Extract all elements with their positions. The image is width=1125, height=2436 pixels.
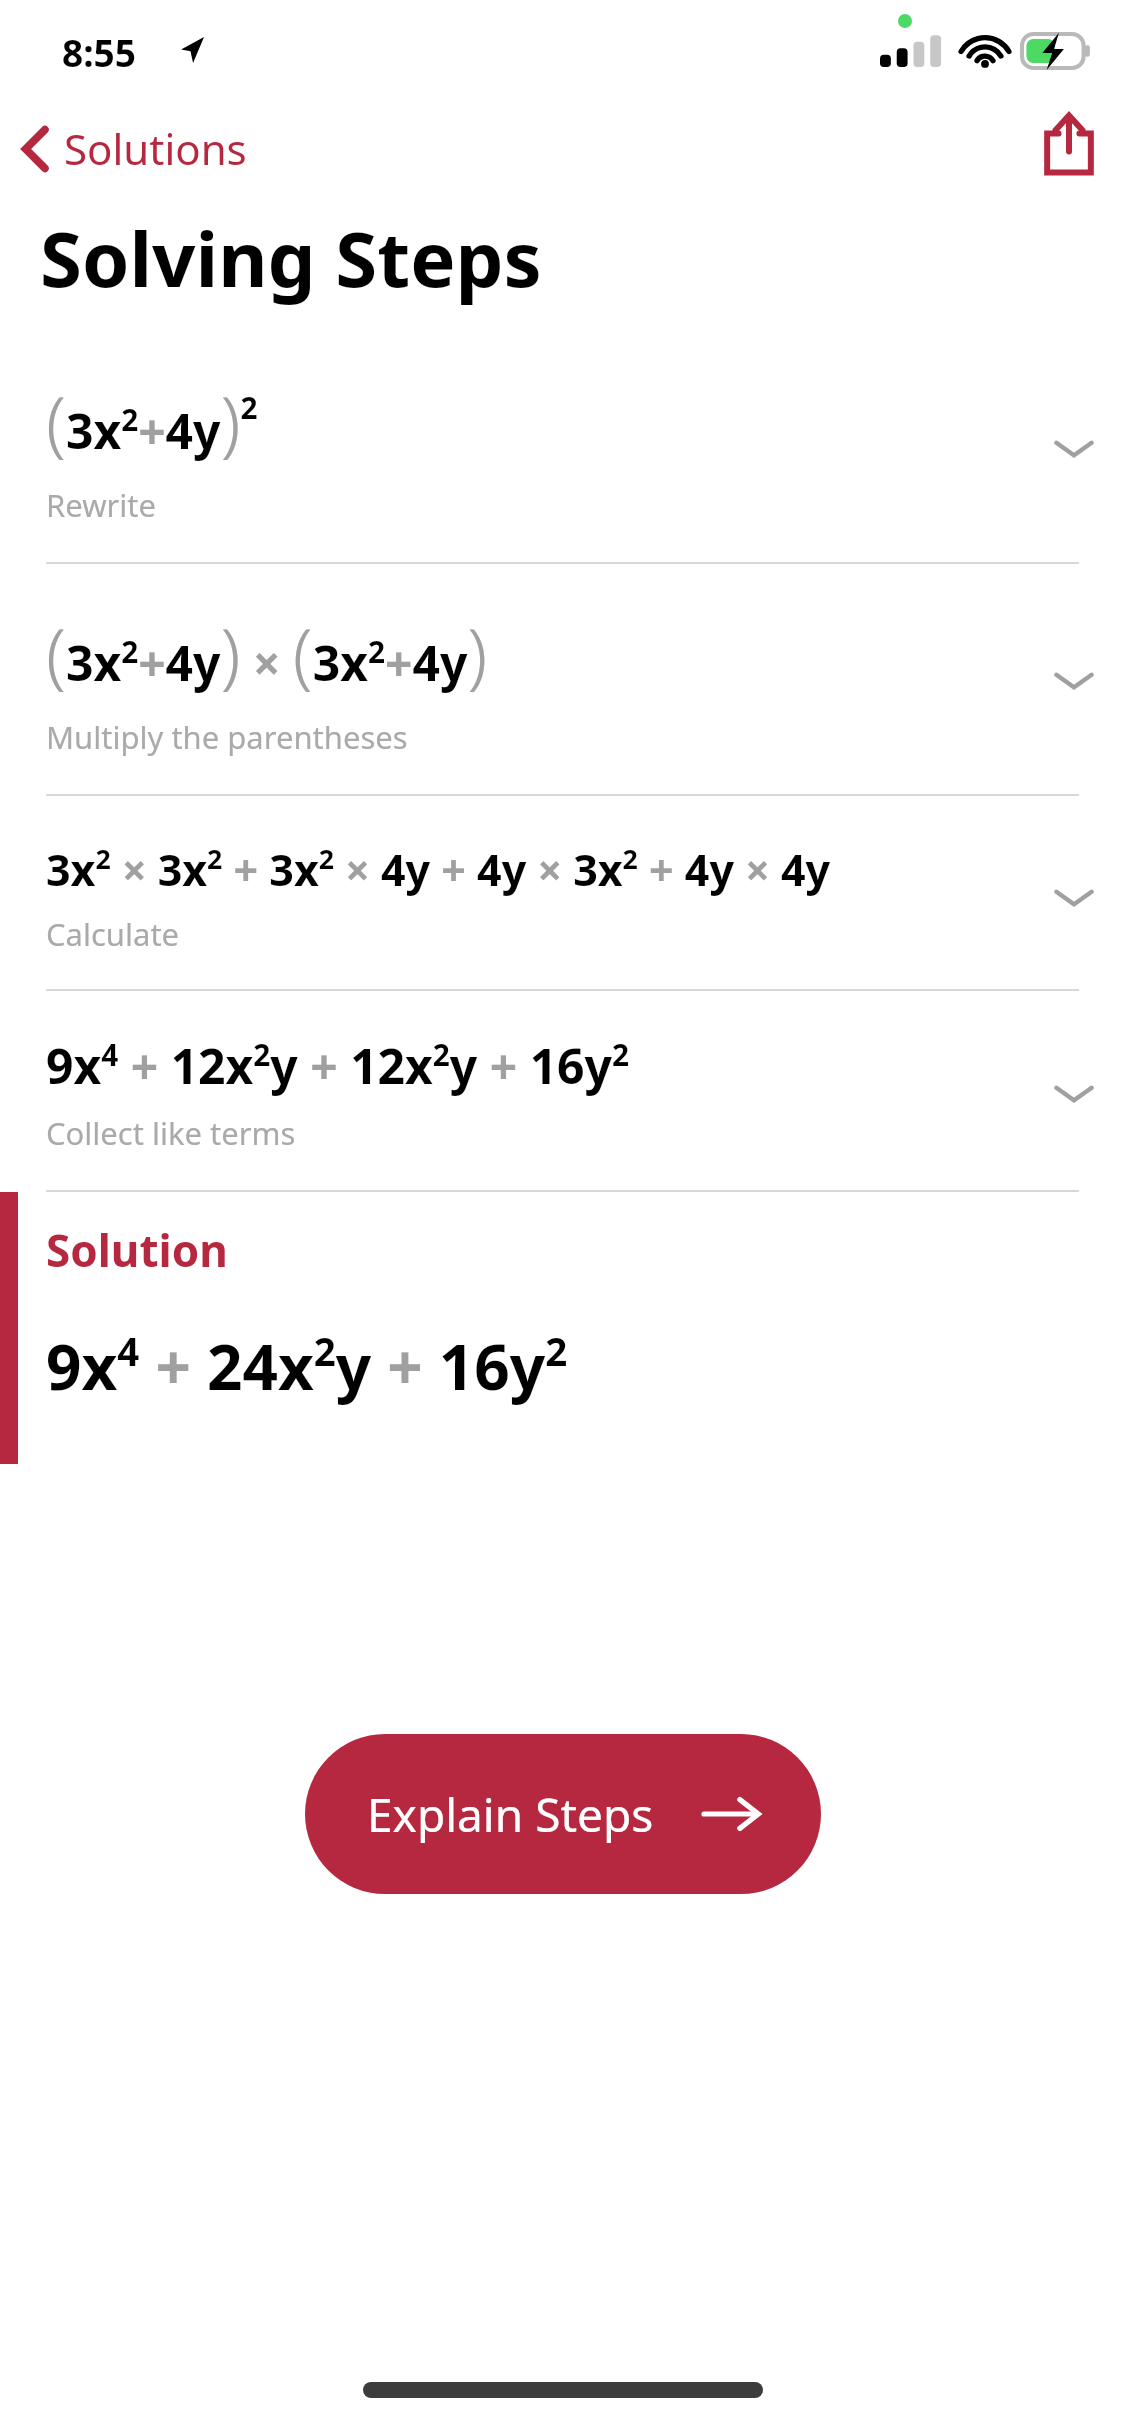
- staticText: Calculate: [46, 913, 180, 955]
- staticText: 8:55: [62, 27, 136, 77]
- staticText: Solving Steps: [40, 206, 542, 310]
- other: Expand Collect like terms: [1053, 1081, 1095, 1107]
- staticText: Explain Steps: [367, 1783, 654, 1846]
- button[interactable]: Explain Steps: [305, 1734, 821, 1894]
- button[interactable]: 9x4 + 12x2y + 12x2y + 16y2: [0, 991, 1125, 1190]
- button[interactable]: 3x2 × 3x2 + 3x2 × 4y + 4y × 3x2 + 4y × 4…: [0, 796, 1125, 989]
- staticText: (3x2+4y)2: [46, 372, 258, 470]
- staticText: 3x2 × 3x2 + 3x2 × 4y + 4y × 3x2 + 4y × 4…: [46, 840, 831, 899]
- staticText: 9x4 + 12x2y + 12x2y + 16y2: [46, 1033, 629, 1098]
- staticText: Collect like terms: [46, 1112, 296, 1154]
- button[interactable]: (3x2+4y)2: [0, 372, 1125, 562]
- staticText: Solutions: [64, 120, 247, 177]
- staticText: Rewrite: [46, 484, 156, 526]
- staticText: 9x4 + 24x2y + 16y2: [46, 1324, 568, 1408]
- staticText: Multiply the parentheses: [46, 716, 408, 758]
- staticText: (3x2+4y) × (3x2+4y): [46, 604, 488, 702]
- button[interactable]: (3x2+4y) × (3x2+4y): [0, 564, 1125, 794]
- button[interactable]: Solutions: [0, 110, 269, 187]
- staticText: Solution: [46, 1220, 228, 1280]
- other: Expand Calculate: [1053, 885, 1095, 911]
- other: Expand Rewrite: [1053, 436, 1095, 462]
- other: Expand Multiply the parentheses: [1053, 668, 1095, 694]
- button[interactable]: Share: [1013, 99, 1125, 189]
